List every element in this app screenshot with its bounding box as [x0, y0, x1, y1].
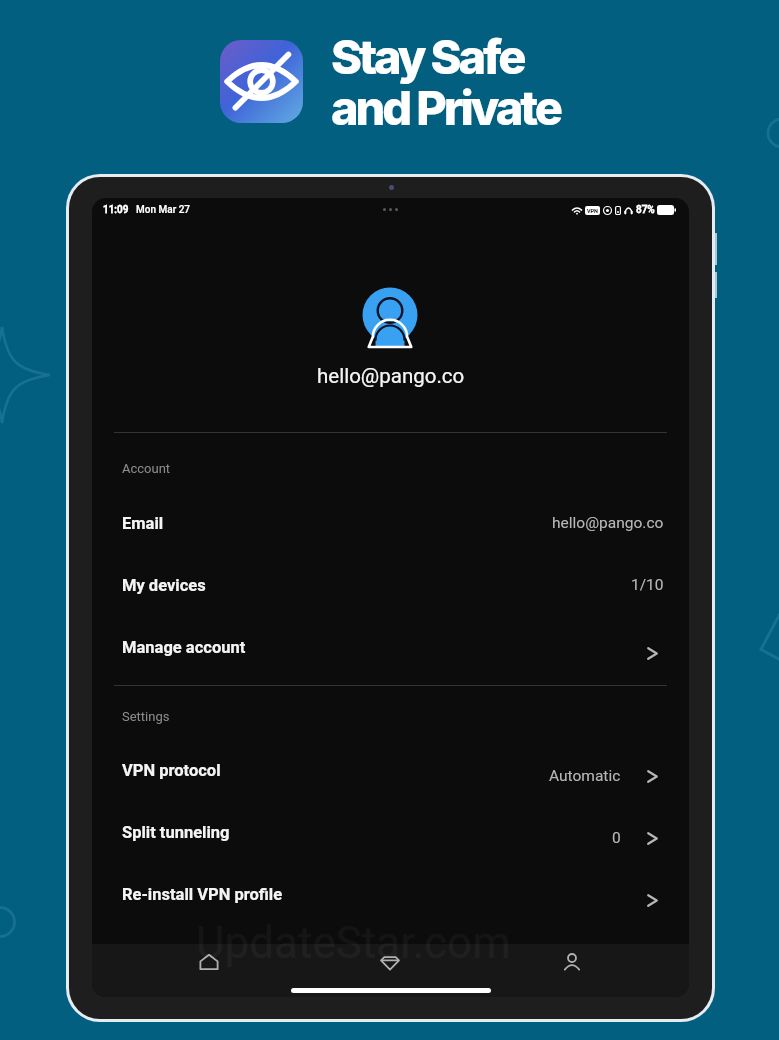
staticText: hello@pango.co: [317, 364, 465, 388]
staticText: 11:09: [103, 204, 129, 216]
button[interactable]: Account: [550, 944, 594, 980]
staticText: VPN: [587, 208, 598, 214]
staticText: hello@pango.co: [552, 514, 664, 532]
staticText: 1/10: [631, 576, 664, 594]
staticText: UpdateStar.com: [196, 917, 511, 969]
button[interactable]: Premium: [368, 944, 412, 980]
staticText: Split tunneling: [122, 823, 230, 842]
staticText: 87%: [636, 204, 655, 216]
staticText: 0: [612, 829, 621, 847]
button[interactable]: VPN protocol: [92, 739, 689, 801]
staticText: Re-install VPN profile: [122, 885, 283, 904]
staticText: Email: [122, 514, 164, 533]
button[interactable]: My devices: [92, 554, 689, 616]
staticText: Manage account: [122, 638, 246, 657]
staticText: My devices: [122, 576, 206, 595]
button[interactable]: Split tunneling: [92, 801, 689, 863]
button[interactable]: Email: [92, 492, 689, 554]
staticText: Settings: [122, 709, 170, 724]
staticText: Mon Mar 27: [136, 204, 191, 216]
staticText: and Private: [331, 79, 560, 136]
staticText: Automatic: [549, 767, 621, 785]
staticText: Stay Safe: [331, 28, 524, 85]
staticText: Account: [122, 461, 171, 476]
button[interactable]: Manage account: [92, 616, 689, 678]
button[interactable]: Re-install VPN profile: [92, 863, 689, 925]
staticText: VPN protocol: [122, 761, 221, 780]
button[interactable]: Home: [187, 944, 231, 980]
